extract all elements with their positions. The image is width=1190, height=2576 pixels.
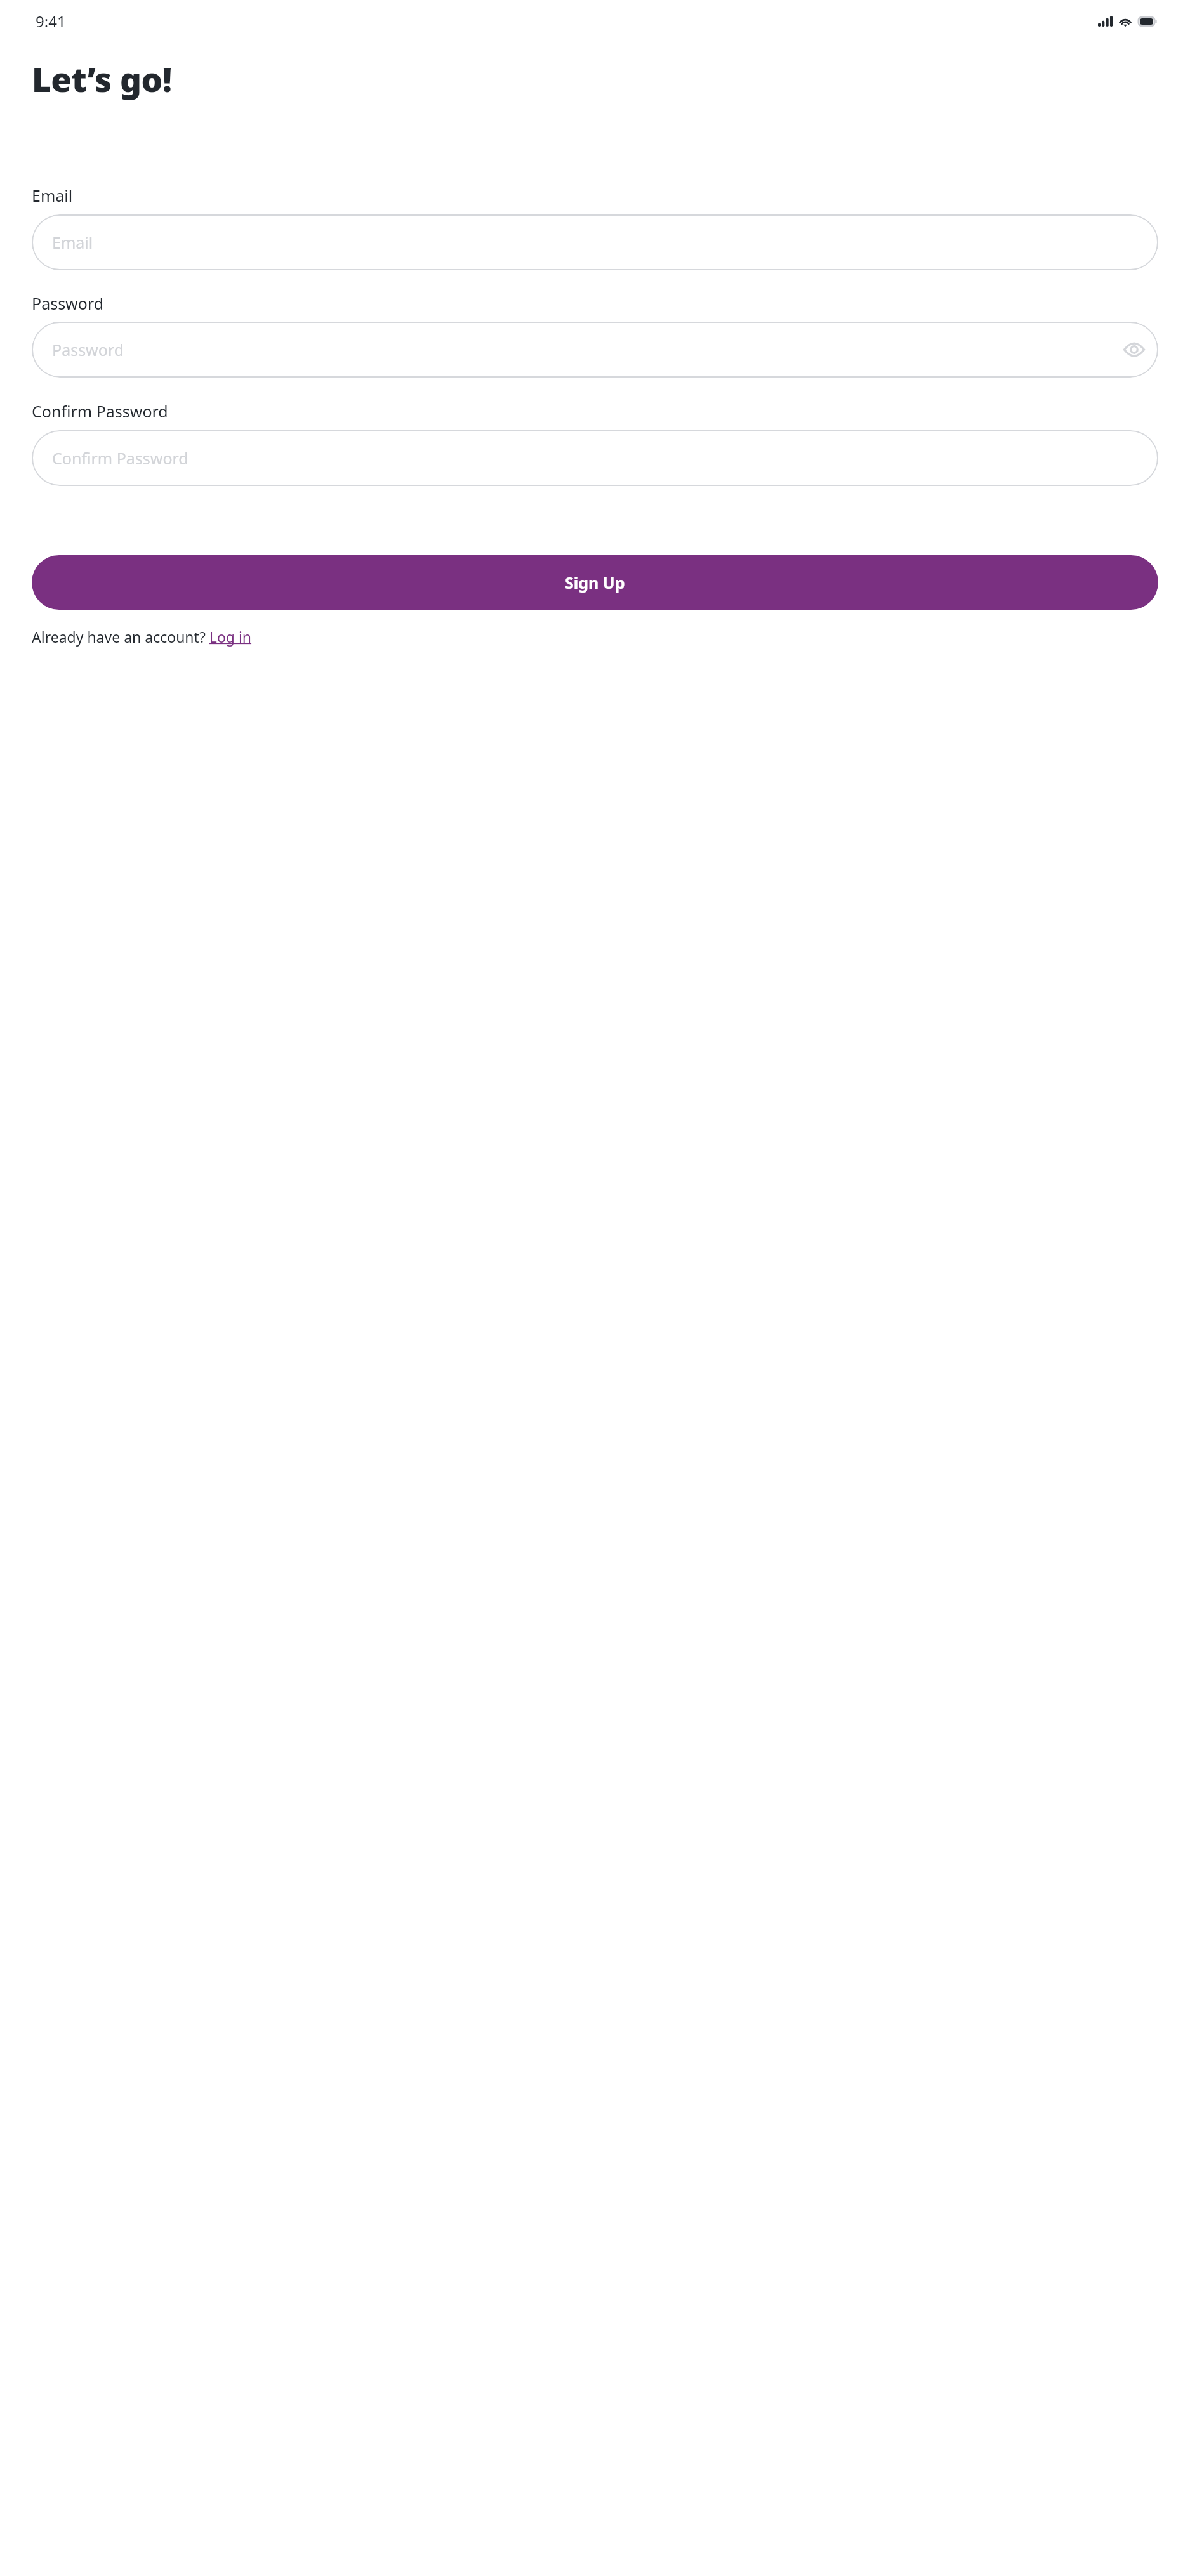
staticText: Password: [52, 339, 124, 360]
staticText: Password: [32, 292, 104, 314]
button[interactable]: Already have an account? Log in: [32, 627, 252, 647]
staticText: Email: [32, 185, 73, 206]
staticText: Email: [52, 232, 93, 253]
button[interactable]: Sign Up: [32, 555, 1158, 610]
staticText: Already have an account? Log in: [32, 627, 252, 647]
staticText: Let’s go!: [32, 56, 172, 102]
staticText: 9:41: [36, 11, 66, 32]
staticText: Confirm Password: [32, 400, 168, 422]
button[interactable]: Password: [32, 322, 1158, 378]
button[interactable]: Email: [32, 214, 1158, 270]
staticText: Confirm Password: [52, 447, 188, 469]
button[interactable]: Confirm Password: [32, 430, 1158, 486]
staticText: Sign Up: [565, 572, 625, 593]
button[interactable]: Show password: [1116, 332, 1152, 367]
